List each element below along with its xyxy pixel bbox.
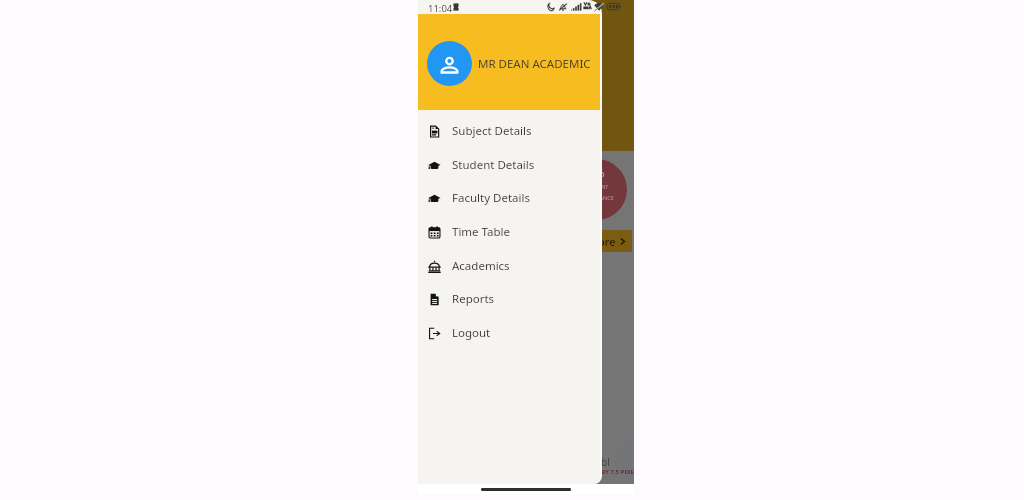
staticText: Faculty Details: [452, 190, 530, 206]
button[interactable]: Subject Details: [418, 114, 600, 148]
staticText: MR DEAN ACADEMIC: [478, 56, 591, 72]
staticText: More: [588, 234, 616, 249]
staticText: ATTENDANCE: [579, 194, 614, 201]
staticText: Time Table: [452, 224, 511, 240]
button[interactable]: Student Details: [418, 148, 600, 182]
staticText: Academics: [452, 258, 510, 274]
staticText: Reports: [452, 291, 495, 307]
staticText: Student Details: [452, 157, 535, 173]
staticText: 11:04: [428, 2, 453, 15]
button[interactable]: Academics: [418, 249, 600, 283]
staticText: bl: [601, 455, 610, 469]
button[interactable]: Reports: [418, 282, 600, 316]
button[interactable]: More: [418, 230, 632, 252]
staticText: STUDENT: [584, 183, 609, 190]
staticText: BY 7.5 PIXELS: [601, 468, 634, 476]
button[interactable]: Faculty Details: [418, 181, 600, 215]
staticText: Logout: [452, 325, 491, 341]
button[interactable]: Logout: [418, 316, 600, 350]
button[interactable]: Profile picture: [418, 14, 600, 110]
button[interactable]: Time Table: [418, 215, 600, 249]
staticText: 0%: [589, 165, 605, 180]
staticText: Subject Details: [452, 123, 532, 139]
button[interactable]: Profile picture: [427, 41, 472, 86]
